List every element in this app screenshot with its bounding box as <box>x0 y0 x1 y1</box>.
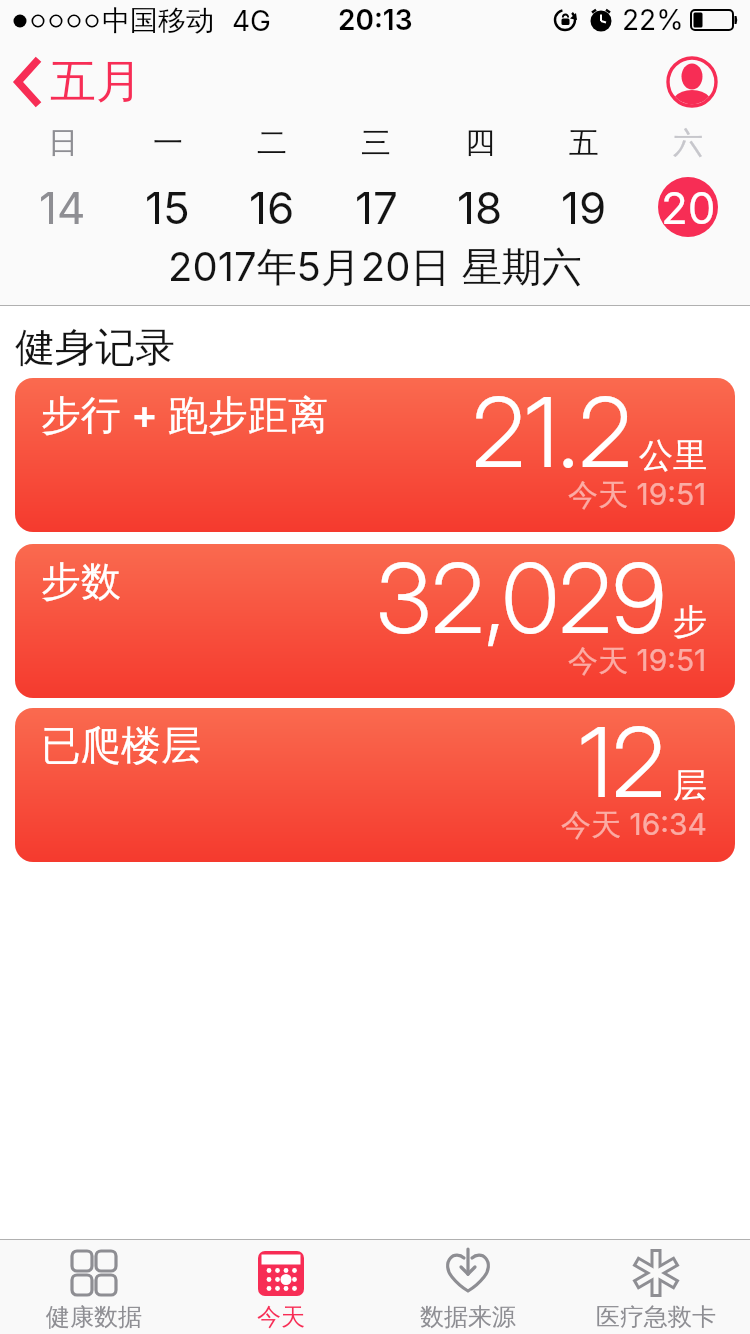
button[interactable]: 19 <box>532 176 636 238</box>
button[interactable]: 20 <box>636 176 740 238</box>
button[interactable]: 数据来源 <box>374 1240 562 1332</box>
button[interactable]: 已爬楼层 <box>15 708 735 862</box>
staticText: 公里 <box>639 434 707 477</box>
staticText: 医疗急救卡 <box>596 1302 716 1332</box>
staticText: 18 <box>457 181 503 234</box>
staticText: 15 <box>145 181 190 234</box>
staticText: 12 <box>579 708 666 820</box>
staticText: 17 <box>355 181 398 234</box>
staticText: 四 <box>465 124 495 158</box>
staticText: 步 <box>673 600 707 643</box>
staticText: 今天 19:51 <box>568 476 707 514</box>
staticText: 二 <box>257 124 287 158</box>
button[interactable]: 16 <box>220 176 324 238</box>
staticText: 五月 <box>50 53 142 111</box>
staticText: 一 <box>153 124 183 158</box>
staticText: 4G <box>232 4 271 38</box>
staticText: 层 <box>673 764 707 807</box>
button[interactable]: 健康数据 <box>0 1240 187 1332</box>
button[interactable]: 步行 + 跑步距离 <box>15 378 735 532</box>
button[interactable] <box>666 56 718 108</box>
staticText: 21.2 <box>472 378 632 490</box>
staticText: 步数 <box>41 556 121 606</box>
staticText: 健康数据 <box>46 1302 142 1332</box>
button[interactable]: 医疗急救卡 <box>562 1240 750 1332</box>
staticText: 六 <box>673 124 703 158</box>
staticText: 20:13 <box>338 3 413 37</box>
staticText: 健身记录 <box>15 322 175 372</box>
staticText: 16 <box>249 181 295 234</box>
button[interactable]: 五月 <box>14 53 142 111</box>
staticText: 2017年5月20日 星期六 <box>168 242 582 293</box>
staticText: 三 <box>361 124 391 158</box>
button[interactable]: 今天 <box>187 1240 374 1332</box>
staticText: 22% <box>622 3 684 37</box>
button[interactable]: 17 <box>324 176 428 238</box>
staticText: 中国移动 <box>102 3 214 38</box>
staticText: 20 <box>661 181 716 234</box>
button[interactable]: 18 <box>428 176 532 238</box>
button[interactable]: 步数 <box>15 544 735 698</box>
staticText: 今天 <box>257 1302 305 1332</box>
staticText: 今天 16:34 <box>561 806 707 844</box>
button[interactable]: 15 <box>115 176 220 238</box>
staticText: 数据来源 <box>420 1302 516 1332</box>
staticText: 步行 + 跑步距离 <box>41 390 329 441</box>
staticText: 五 <box>569 124 599 158</box>
staticText: 日 <box>48 124 78 158</box>
staticText: 32,029 <box>376 544 666 656</box>
staticText: 14 <box>39 181 86 234</box>
staticText: 19 <box>561 181 607 234</box>
staticText: 已爬楼层 <box>41 720 201 770</box>
button[interactable]: 14 <box>10 176 115 238</box>
staticText: 今天 19:51 <box>568 642 707 680</box>
